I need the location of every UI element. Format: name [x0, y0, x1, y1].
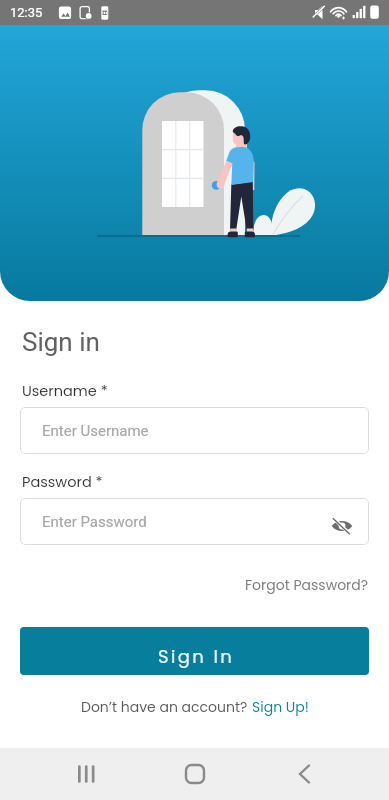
button[interactable]: Sign In — [20, 627, 369, 675]
button[interactable]: Home — [169, 748, 221, 800]
staticText: Enter Password — [42, 513, 147, 531]
button[interactable]: Enter Username — [20, 407, 369, 454]
staticText: Don’t have an account? — [81, 697, 252, 717]
staticText: Username * — [22, 381, 108, 401]
staticText: Enter Username — [42, 422, 149, 440]
staticText: 12:35 — [10, 5, 43, 20]
staticText: Sign in — [22, 327, 100, 357]
button[interactable]: Show password — [328, 512, 356, 540]
button[interactable]: Recents — [58, 748, 110, 800]
staticText: Sign In — [158, 644, 235, 669]
button[interactable]: Enter Password — [20, 498, 369, 545]
staticText: Password * — [22, 472, 103, 492]
button[interactable]: Back — [279, 748, 331, 800]
button[interactable]: Sign Up! — [252, 697, 309, 717]
button[interactable]: Forgot Password? — [245, 575, 369, 595]
